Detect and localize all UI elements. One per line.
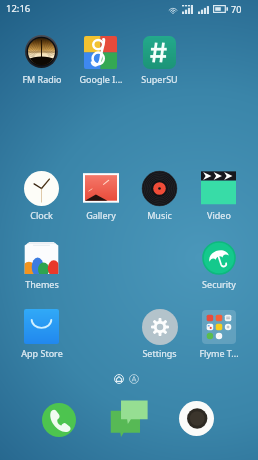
button[interactable]: Themes <box>12 240 71 290</box>
button[interactable]: Clock <box>12 171 71 221</box>
staticText: Video <box>207 209 231 221</box>
button[interactable]: App Store <box>12 309 71 359</box>
button[interactable]: Home screen page <box>114 374 124 384</box>
button[interactable]: Security <box>189 240 248 290</box>
button[interactable]: Settings <box>130 309 189 359</box>
staticText: 12:16 <box>6 2 31 15</box>
staticText: Security <box>202 278 236 290</box>
staticText: Clock <box>30 209 53 221</box>
staticText: FM Radio <box>22 73 62 85</box>
button[interactable]: Flyme T... <box>189 309 248 359</box>
button[interactable]: Camera <box>179 401 214 436</box>
button[interactable]: Phone <box>42 403 76 437</box>
button[interactable]: Messaging <box>110 399 148 437</box>
button[interactable]: App drawer page <box>129 374 139 384</box>
staticText: Themes <box>25 278 59 290</box>
staticText: Settings <box>142 347 177 359</box>
staticText: Flyme T... <box>199 347 239 359</box>
staticText: App Store <box>21 347 63 359</box>
button[interactable]: Google I... <box>71 35 130 85</box>
staticText: Music <box>147 209 172 221</box>
button[interactable]: FM Radio <box>12 35 71 85</box>
button[interactable]: SuperSU <box>130 35 189 85</box>
staticText: Gallery <box>86 209 116 221</box>
button[interactable]: Gallery <box>71 171 130 221</box>
button[interactable]: Video <box>189 171 248 221</box>
staticText: Google I... <box>79 73 123 85</box>
staticText: 70 <box>231 3 242 15</box>
staticText: SuperSU <box>141 73 178 85</box>
button[interactable]: Music <box>130 171 189 221</box>
